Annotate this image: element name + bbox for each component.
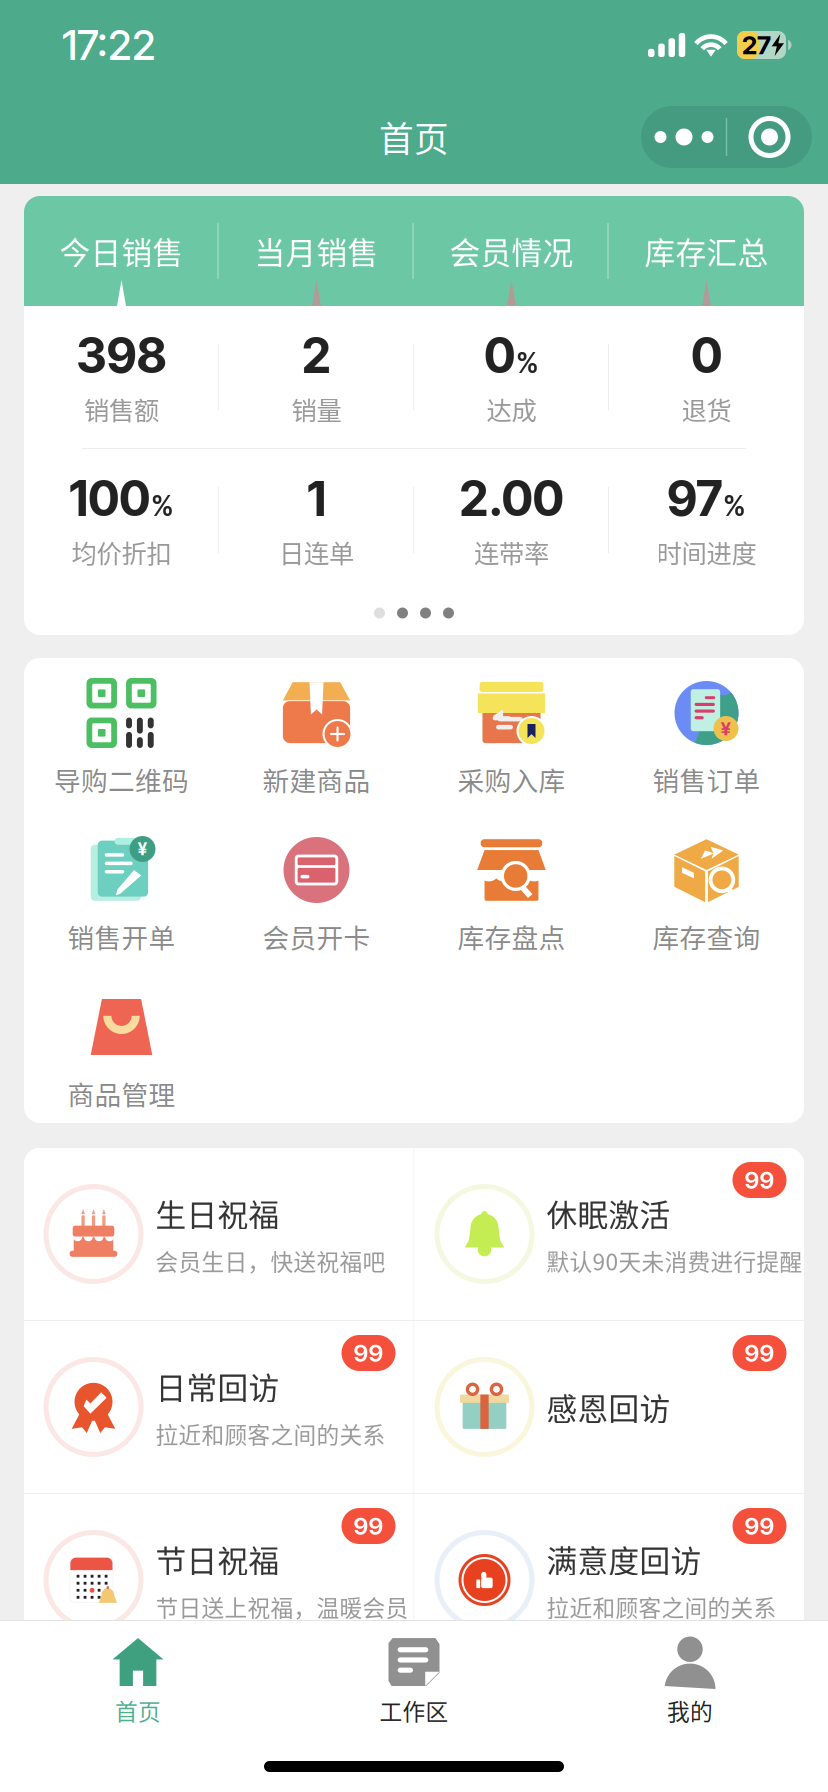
staticText: 库存盘点	[457, 917, 565, 956]
staticText: 日常回访	[155, 1364, 279, 1408]
staticText: 1	[307, 470, 326, 528]
button[interactable]: ¥	[24, 815, 219, 972]
button[interactable]: 我的	[552, 1621, 828, 1731]
button[interactable]: 更多	[641, 106, 812, 168]
staticText: 日连单	[279, 534, 354, 570]
button[interactable]: 今日销售	[24, 196, 219, 306]
staticText: 17:22	[62, 20, 156, 70]
staticText: 398	[76, 327, 166, 385]
button[interactable]: 会员情况	[414, 196, 609, 306]
staticText: 感恩回访	[546, 1385, 670, 1429]
staticText: 拉近和顾客之间的关系	[546, 1590, 776, 1623]
staticText: ¥	[720, 717, 731, 740]
button[interactable]: 当月销售	[219, 196, 414, 306]
staticText: 销量	[291, 391, 341, 427]
staticText: 2.00	[459, 470, 563, 528]
button[interactable]: 库存汇总	[609, 196, 804, 306]
staticText: 拉近和顾客之间的关系	[155, 1417, 385, 1450]
staticText: 0	[484, 327, 515, 385]
staticText: 均价折扣	[71, 534, 171, 570]
staticText: 当月销售	[254, 229, 378, 273]
staticText: ¥	[137, 838, 147, 859]
staticText: 27	[742, 30, 771, 60]
staticText: 新建商品	[262, 760, 370, 799]
staticText: %	[151, 489, 174, 523]
staticText: 销售订单	[652, 760, 760, 799]
staticText: 满意度回访	[546, 1537, 701, 1581]
button[interactable]: 日常回访	[23, 1321, 413, 1493]
button[interactable]: 导购二维码	[24, 658, 219, 815]
staticText: 99	[353, 1511, 383, 1540]
staticText: 97	[667, 470, 722, 528]
button[interactable]: 采购入库	[414, 658, 609, 815]
staticText: 销售开单	[67, 917, 175, 956]
staticText: 库存汇总	[644, 229, 768, 273]
staticText: 默认90天未消费进行提醒	[546, 1244, 802, 1277]
button[interactable]: 库存查询	[609, 815, 804, 972]
staticText: 99	[744, 1511, 774, 1540]
button[interactable]: 会员开卡	[219, 815, 414, 972]
staticText: 0	[691, 327, 722, 385]
staticText: 2	[302, 327, 331, 385]
staticText: 时间进度	[656, 534, 756, 570]
staticText: 99	[744, 1165, 774, 1194]
button[interactable]: 库存盘点	[414, 815, 609, 972]
staticText: 会员生日，快送祝福吧	[155, 1244, 385, 1277]
staticText: 99	[744, 1338, 774, 1367]
button[interactable]: ¥	[609, 658, 804, 815]
staticText: 商品管理	[67, 1074, 175, 1113]
staticText: 库存查询	[652, 917, 760, 956]
button[interactable]: 节日祝福	[23, 1494, 413, 1666]
button[interactable]: 新建商品	[219, 658, 414, 815]
staticText: 会员情况	[449, 229, 573, 273]
staticText: 休眠激活	[546, 1191, 670, 1235]
staticText: 首页	[115, 1694, 161, 1727]
staticText: 销售额	[84, 391, 159, 427]
staticText: 生日祝福	[155, 1191, 279, 1235]
button[interactable]: 工作区	[276, 1621, 552, 1731]
staticText: 导购二维码	[54, 760, 189, 799]
staticText: 采购入库	[457, 760, 565, 799]
staticText: 连带率	[474, 534, 549, 570]
button[interactable]: 生日祝福	[23, 1148, 413, 1320]
staticText: 99	[353, 1338, 383, 1367]
staticText: 退货	[681, 391, 731, 427]
staticText: 我的	[667, 1694, 713, 1727]
staticText: 节日祝福	[155, 1537, 279, 1581]
staticText: 今日销售	[59, 229, 183, 273]
staticText: 工作区	[379, 1694, 448, 1727]
button[interactable]: 首页	[0, 1621, 276, 1731]
button[interactable]: 商品管理	[24, 972, 219, 1129]
staticText: 节日送上祝福，温暖会员	[155, 1590, 408, 1623]
staticText: 100	[69, 470, 150, 528]
button[interactable]: 满意度回访	[414, 1494, 804, 1666]
staticText: 会员开卡	[262, 917, 370, 956]
staticText: 达成	[486, 391, 536, 427]
button[interactable]: 休眠激活	[414, 1148, 804, 1320]
button[interactable]: 感恩回访	[414, 1321, 804, 1493]
staticText: 首页	[379, 112, 449, 162]
staticText: %	[516, 346, 539, 380]
staticText: %	[723, 489, 746, 523]
